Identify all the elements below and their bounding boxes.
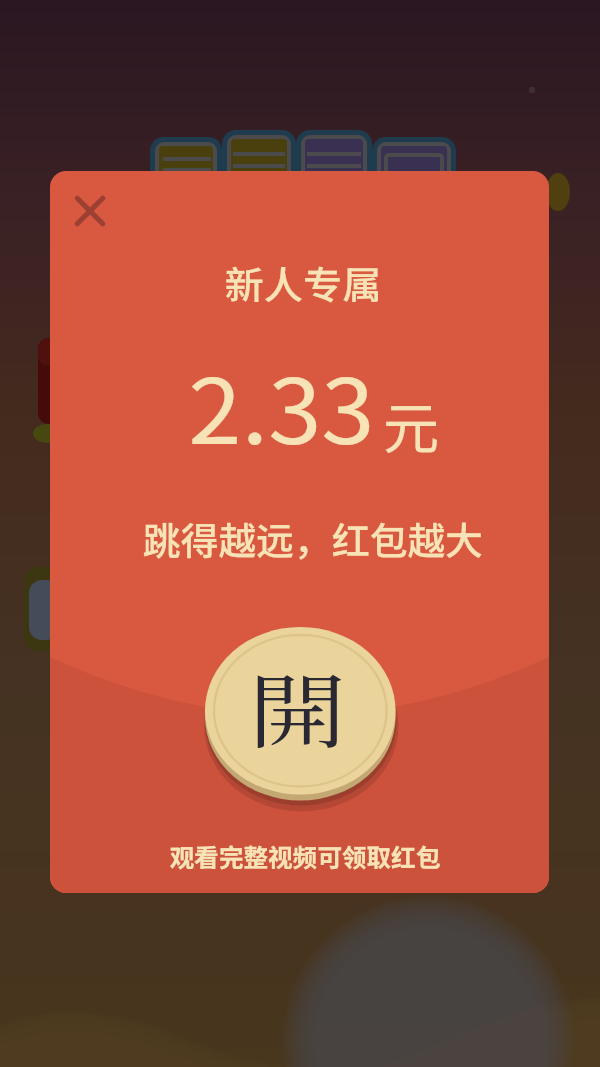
staticText: 元 (383, 384, 439, 465)
staticText: 跳得越远，红包越大 (143, 511, 484, 566)
staticText: 開 (248, 648, 348, 764)
staticText: 新人专属 (225, 255, 382, 310)
staticText: 观看完整视频可领取红包 (169, 838, 441, 874)
button[interactable]: 开红包 (205, 627, 396, 809)
staticText: 2.33 (188, 340, 375, 470)
button[interactable]: Close (60, 181, 120, 241)
